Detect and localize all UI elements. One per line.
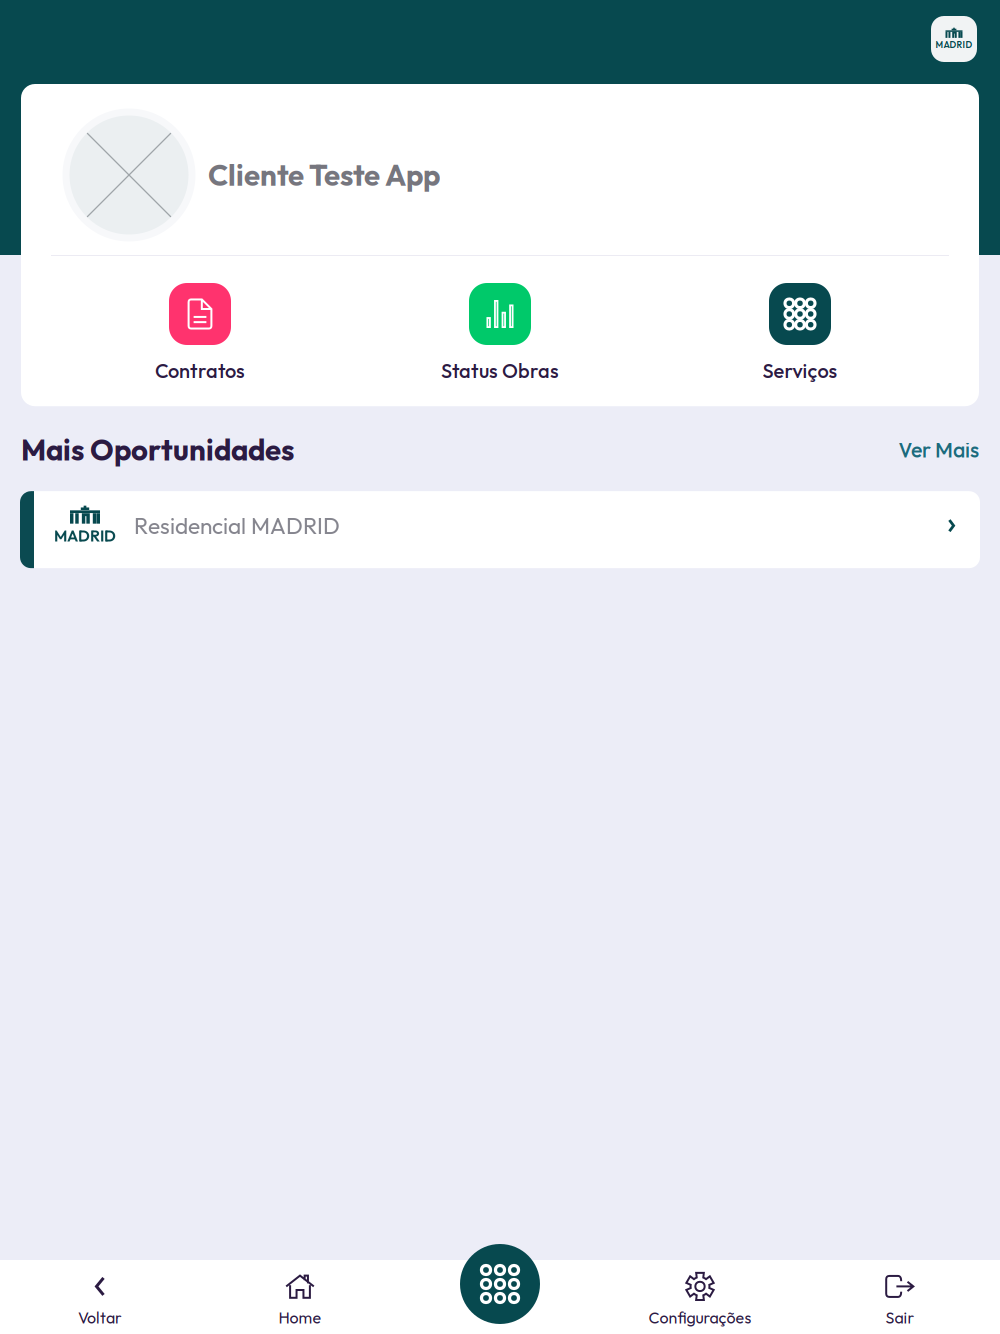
staticText: Serviços: [762, 358, 837, 383]
staticText: Contratos: [155, 358, 245, 383]
button[interactable]: Ver Mais: [898, 436, 979, 463]
button[interactable]: Status Obras: [350, 283, 650, 383]
button[interactable]: Home: [200, 1254, 400, 1334]
button[interactable]: MADRID: [0, 491, 1000, 568]
button[interactable]: Madrid: [931, 16, 977, 62]
button[interactable]: Serviços: [650, 283, 950, 383]
button[interactable]: Voltar: [0, 1254, 200, 1334]
staticText: Mais Oportunidades: [21, 431, 294, 468]
staticText: Sair: [885, 1307, 914, 1328]
staticText: MADRID: [54, 526, 116, 546]
staticText: Ver Mais: [898, 436, 979, 463]
button[interactable]: Configurações: [600, 1254, 800, 1334]
button[interactable]: Serviços: [460, 1244, 540, 1324]
staticText: Voltar: [78, 1307, 122, 1328]
staticText: Cliente Teste App: [208, 156, 440, 193]
staticText: Status Obras: [441, 358, 559, 383]
button[interactable]: Contratos: [50, 283, 350, 383]
staticText: Residencial MADRID: [134, 511, 340, 540]
staticText: Home: [278, 1307, 321, 1328]
staticText: Configurações: [648, 1307, 751, 1328]
staticText: MADRID: [935, 39, 972, 50]
button[interactable]: Sair: [800, 1254, 1000, 1334]
